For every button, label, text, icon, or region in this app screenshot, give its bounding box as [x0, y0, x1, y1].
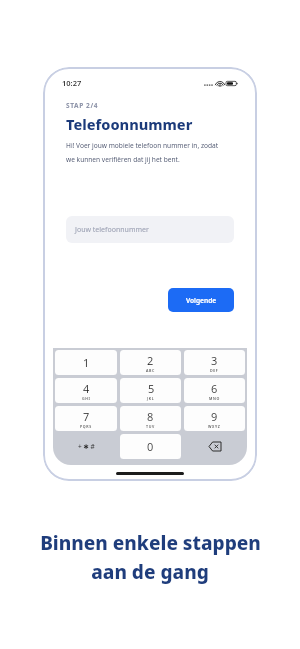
button[interactable]: Backspace — [184, 434, 245, 459]
staticText: GHI — [82, 396, 91, 401]
staticText: + ✱ # — [78, 442, 95, 451]
staticText: 6 — [211, 381, 218, 396]
staticText: 2 — [147, 353, 154, 368]
button[interactable]: 8 — [120, 406, 181, 431]
staticText: PQRS — [80, 424, 92, 429]
staticText: 9 — [211, 409, 218, 424]
staticText: DEF — [210, 368, 219, 373]
button[interactable]: Jouw telefoonnummer — [66, 216, 234, 243]
button[interactable]: 4 — [55, 378, 117, 403]
button[interactable]: 6 — [184, 378, 245, 403]
button[interactable]: 3 — [184, 350, 245, 375]
staticText: aan de gang — [91, 559, 209, 585]
staticText: Jouw telefoonnummer — [75, 225, 149, 235]
staticText: 1 — [83, 355, 90, 370]
staticText: 8 — [147, 409, 154, 424]
button[interactable]: 7 — [55, 406, 117, 431]
button[interactable]: Symbols — [55, 434, 117, 459]
staticText: MNO — [209, 396, 220, 401]
button[interactable]: 9 — [184, 406, 245, 431]
staticText: ABC — [146, 368, 155, 373]
staticText: 10:27 — [62, 78, 82, 88]
button[interactable]: 5 — [120, 378, 181, 403]
staticText: WXYZ — [208, 424, 221, 429]
staticText: TUV — [146, 424, 155, 429]
button[interactable]: Volgende — [168, 288, 234, 312]
staticText: JKL — [147, 396, 155, 401]
button[interactable]: 1 — [55, 350, 117, 375]
staticText: 3 — [211, 353, 218, 368]
staticText: Volgende — [186, 296, 217, 305]
button[interactable]: 2 — [120, 350, 181, 375]
button[interactable]: 0 — [120, 434, 181, 459]
staticText: 7 — [83, 409, 90, 424]
staticText: 4 — [83, 381, 90, 396]
staticText: we kunnen verifiëren dat jij het bent. — [66, 155, 180, 164]
staticText: STAP 2/4 — [66, 101, 99, 110]
staticText: 5 — [148, 381, 155, 396]
staticText: 0 — [147, 439, 154, 454]
staticText: Telefoonnummer — [66, 114, 193, 134]
staticText: Binnen enkele stappen — [40, 530, 261, 556]
staticText: Hi! Voer jouw mobiele telefoon nummer in… — [66, 141, 219, 150]
